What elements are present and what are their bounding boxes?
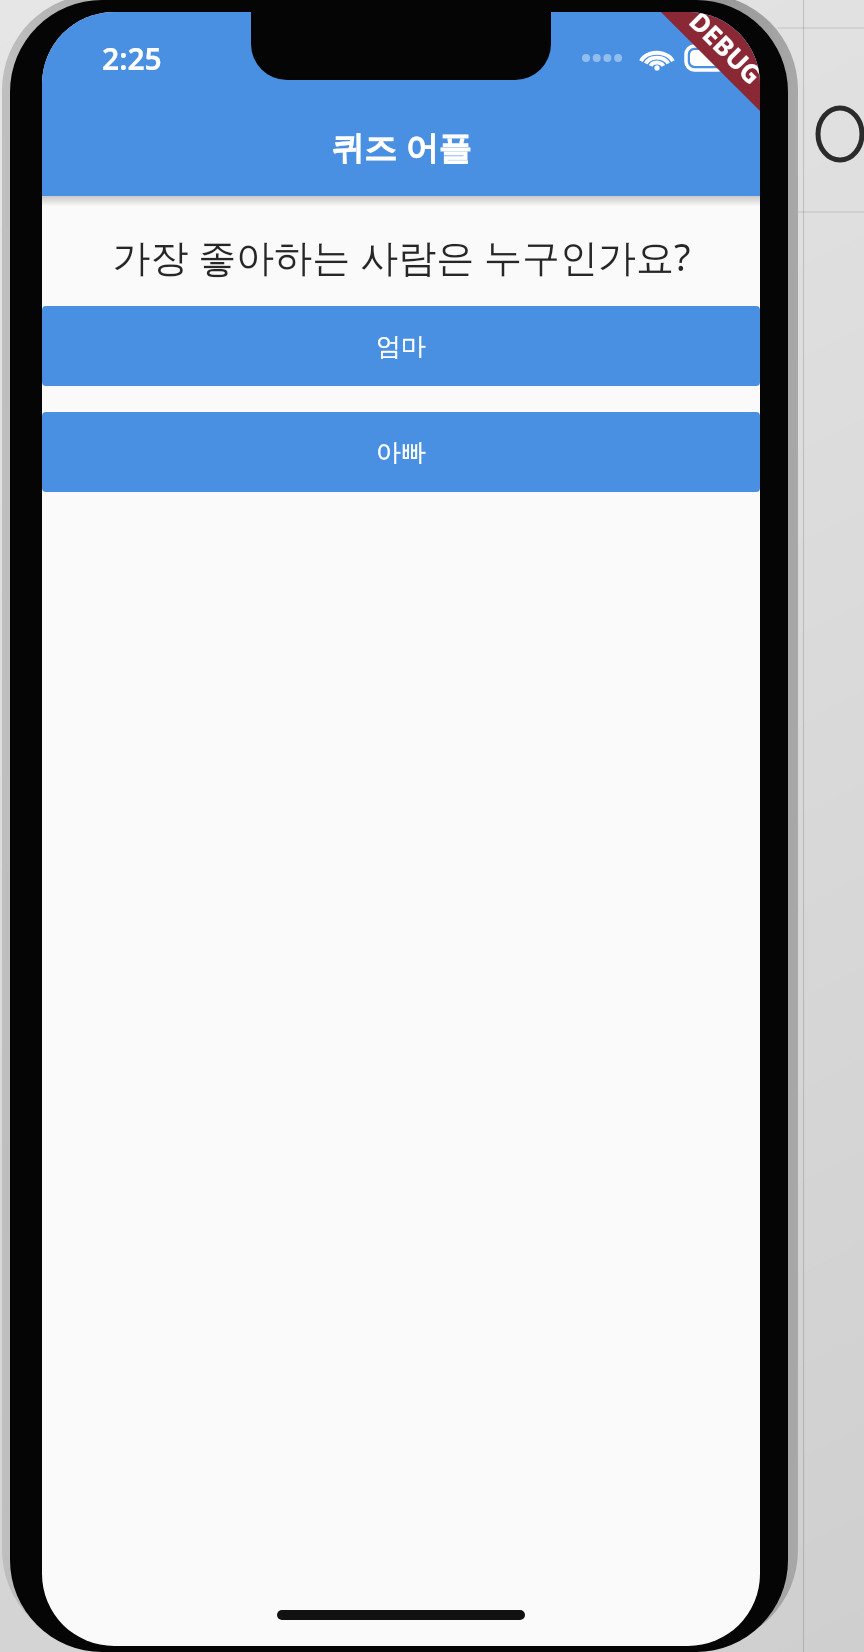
staticText: DEBUG [682,12,760,91]
button[interactable]: 엄마 [42,306,760,386]
staticText: 퀴즈 어플 [331,125,472,170]
button[interactable]: 아빠 [42,412,760,492]
staticText: 2:25 [102,38,162,79]
staticText: 엄마 [376,331,426,362]
staticText: 아빠 [376,437,426,468]
staticText: 가장 좋아하는 사람은 누구인가요? [112,230,691,282]
